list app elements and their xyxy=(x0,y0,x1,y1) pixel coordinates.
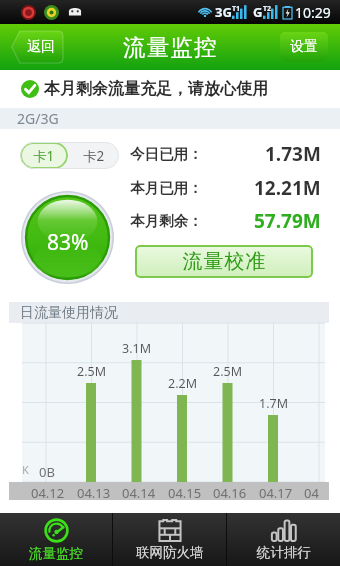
staticText: 3G xyxy=(215,3,232,21)
staticText: 返回 xyxy=(27,38,55,56)
button[interactable]: 流量校准 xyxy=(135,245,313,278)
staticText: 04.14 xyxy=(122,484,156,502)
staticText: 3.1M xyxy=(122,340,151,357)
staticText: 流量监控 xyxy=(29,545,83,562)
staticText: G xyxy=(253,3,263,21)
staticText: 本月剩余流量充足，请放心使用 xyxy=(44,79,268,99)
staticText: 2.5M xyxy=(77,363,106,380)
staticText: 04 xyxy=(304,484,319,502)
button[interactable]: 设置 xyxy=(280,32,328,62)
staticText: 卡2 xyxy=(83,147,105,165)
staticText: 2G/3G xyxy=(17,109,59,128)
button[interactable]: 流量监控 xyxy=(0,513,112,566)
staticText: 本月已用： xyxy=(130,179,203,197)
staticText: 04.15 xyxy=(168,484,202,502)
staticText: T1 xyxy=(232,4,241,14)
staticText: 2.2M xyxy=(168,375,197,392)
button[interactable]: 联网防火墙 xyxy=(113,513,226,566)
staticText: 卡1 xyxy=(33,147,55,165)
staticText: 04.13 xyxy=(77,484,111,502)
other: 联网防火墙 xyxy=(158,518,182,542)
staticText: 流量监控 xyxy=(123,33,218,61)
staticText: 联网防火墙 xyxy=(136,544,204,561)
staticText: 流量校准 xyxy=(182,249,266,274)
staticText: 04.16 xyxy=(213,484,247,502)
staticText: 本月剩余： xyxy=(130,212,203,230)
staticText: 日流量使用情况 xyxy=(20,304,118,322)
staticText: K xyxy=(22,462,29,477)
staticText: 0B xyxy=(39,463,55,481)
other: 统计排行 xyxy=(271,518,296,542)
staticText: 1.7M xyxy=(259,395,288,412)
staticText: 04.17 xyxy=(259,484,293,502)
staticText: 10:29 xyxy=(295,3,331,22)
staticText: 2.5M xyxy=(213,363,242,380)
staticText: 1.73M xyxy=(265,141,321,167)
staticText: 设置 xyxy=(290,38,318,56)
button[interactable]: 返回 xyxy=(11,31,63,63)
button[interactable]: 统计排行 xyxy=(227,513,340,566)
other: 流量监控 xyxy=(44,518,69,543)
staticText: 57.79M xyxy=(254,208,321,234)
staticText: 12.21M xyxy=(254,175,321,201)
staticText: 统计排行 xyxy=(257,544,311,561)
staticText: T2 xyxy=(263,4,272,14)
button[interactable]: 卡1 xyxy=(20,142,68,169)
staticText: 04.12 xyxy=(31,484,65,502)
button[interactable]: 卡2 xyxy=(68,142,119,169)
staticText: 83% xyxy=(47,228,89,257)
staticText: 今日已用： xyxy=(130,145,203,163)
